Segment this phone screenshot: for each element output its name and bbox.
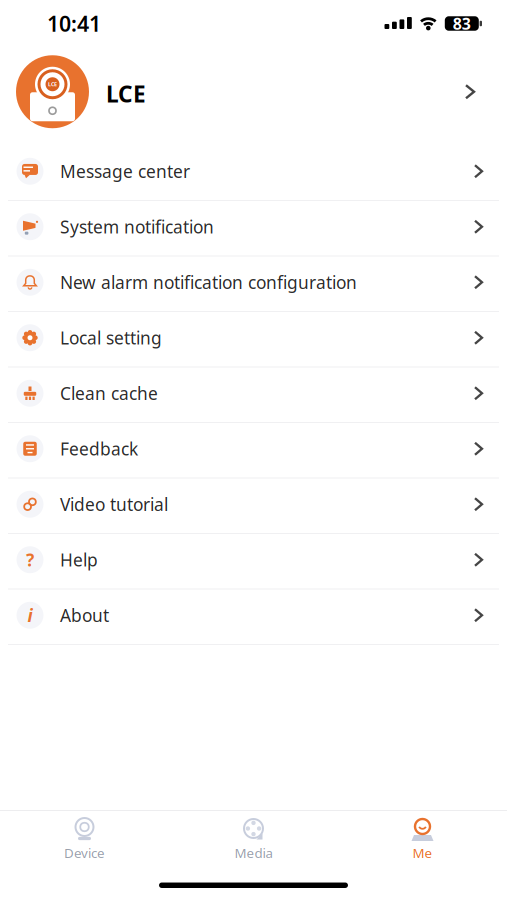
staticText: Device <box>64 844 105 862</box>
staticText: Media <box>234 844 272 862</box>
button[interactable]: Media <box>169 818 338 862</box>
staticText: LCE <box>106 79 146 109</box>
button[interactable]: Me <box>338 818 507 862</box>
staticText: Me <box>412 844 432 862</box>
button[interactable]: Local setting <box>0 312 507 367</box>
staticText: Feedback <box>60 437 138 460</box>
button[interactable]: LCE <box>0 38 507 145</box>
button[interactable]: Device <box>0 818 169 862</box>
staticText: Local setting <box>60 326 162 349</box>
staticText: Message center <box>60 160 190 183</box>
staticText: System notification <box>60 215 214 238</box>
button[interactable]: Message center <box>0 145 507 201</box>
staticText: Video tutorial <box>60 493 168 516</box>
button[interactable]: Clean cache <box>0 367 507 423</box>
button[interactable]: Feedback <box>0 423 507 478</box>
staticText: i <box>27 604 32 627</box>
staticText: Clean cache <box>60 382 158 405</box>
staticText: LCE <box>48 81 57 88</box>
button[interactable]: System notification <box>0 201 507 256</box>
button[interactable]: Video tutorial <box>0 478 507 534</box>
staticText: 83 <box>453 13 471 34</box>
button[interactable]: New alarm notification configuration <box>0 256 507 312</box>
staticText: Help <box>60 548 98 571</box>
staticText: ? <box>26 548 34 571</box>
staticText: About <box>60 604 109 627</box>
button[interactable]: ? <box>0 534 507 589</box>
staticText: 10:41 <box>47 9 101 38</box>
staticText: New alarm notification configuration <box>60 271 357 294</box>
button[interactable]: i <box>0 589 507 645</box>
